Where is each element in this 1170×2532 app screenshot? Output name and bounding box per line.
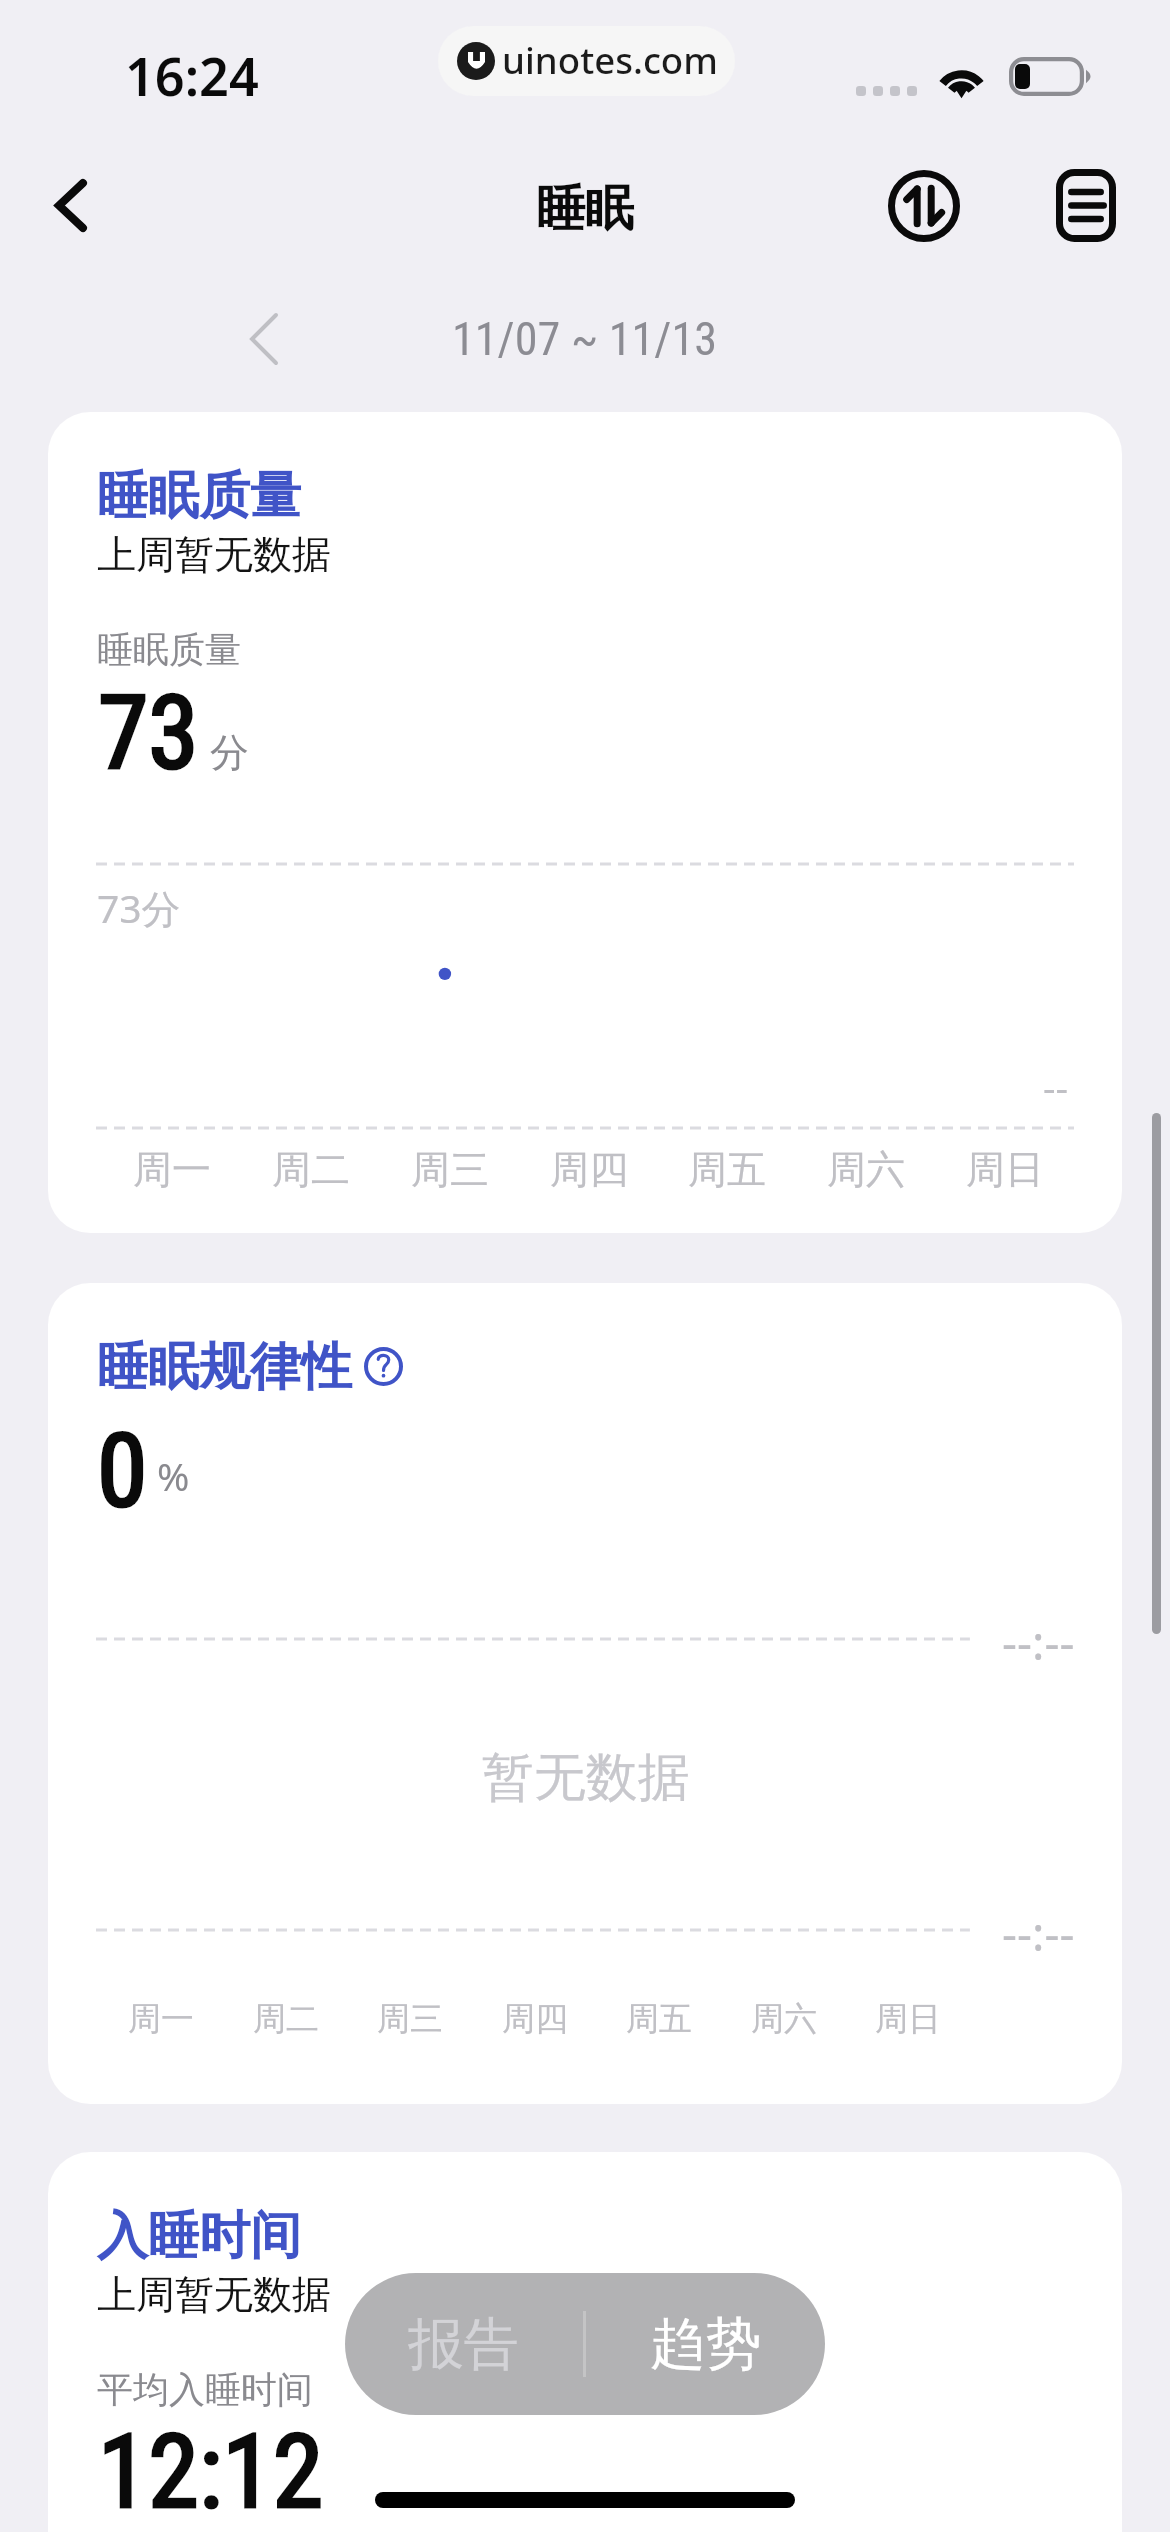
staticText: 周四 [502, 1998, 568, 2040]
staticText: 睡眠 [536, 178, 634, 240]
staticText: 周三 [377, 1998, 443, 2040]
staticText: -- [1043, 1060, 1069, 1113]
button[interactable]: 报告 [345, 2273, 583, 2415]
staticText: 睡眠质量 [97, 464, 301, 528]
staticText: 12:12 [98, 2412, 324, 2532]
staticText: uinotes.com [502, 35, 718, 85]
staticText: 16:24 [125, 40, 259, 111]
staticText: 周日 [966, 1145, 1044, 1194]
staticText: 周二 [253, 1998, 319, 2040]
staticText: 报告 [408, 2309, 520, 2379]
staticText: 周五 [626, 1998, 692, 2040]
staticText: --:-- [1002, 1610, 1075, 1673]
staticText: 周日 [875, 1998, 941, 2040]
button[interactable]: What is sleep regularity [331, 1314, 436, 1419]
staticText: 入睡时间 [97, 2204, 301, 2268]
staticText: 0 [97, 1411, 148, 1531]
staticText: 周六 [751, 1998, 817, 2040]
staticText: 睡眠质量 [97, 627, 241, 672]
button[interactable]: Previous week [204, 279, 324, 399]
staticText: 睡眠规律性 [97, 1335, 352, 1399]
staticText: 周一 [128, 1998, 194, 2040]
staticText: 上周暂无数据 [97, 530, 331, 579]
staticText: 暂无数据 [482, 1745, 690, 1810]
button[interactable]: 睡眠质量 [48, 412, 1122, 1233]
staticText: 趋势 [650, 2309, 762, 2379]
staticText: 上周暂无数据 [97, 2270, 331, 2319]
button[interactable]: 入睡时间 [48, 2152, 1122, 2532]
staticText: 周一 [133, 1145, 211, 1194]
button[interactable]: 睡眠规律性 [48, 1283, 1122, 2104]
staticText: 周三 [411, 1145, 489, 1194]
staticText: % [157, 1449, 190, 1502]
button[interactable]: List [1020, 139, 1152, 271]
staticText: 73分 [97, 881, 181, 934]
staticText: 分 [210, 728, 249, 777]
staticText: 周六 [827, 1145, 905, 1194]
staticText: 周四 [550, 1145, 628, 1194]
staticText: 平均入睡时间 [97, 2367, 313, 2412]
button[interactable]: Back [5, 139, 137, 271]
staticText: 11/07 ~ 11/13 [452, 312, 718, 366]
staticText: 周五 [688, 1145, 766, 1194]
staticText: --:-- [1002, 1901, 1075, 1964]
button[interactable]: 趋势 [586, 2273, 825, 2415]
staticText: 73 [98, 673, 199, 793]
staticText: 周二 [272, 1145, 350, 1194]
button[interactable]: Sync [858, 140, 990, 272]
